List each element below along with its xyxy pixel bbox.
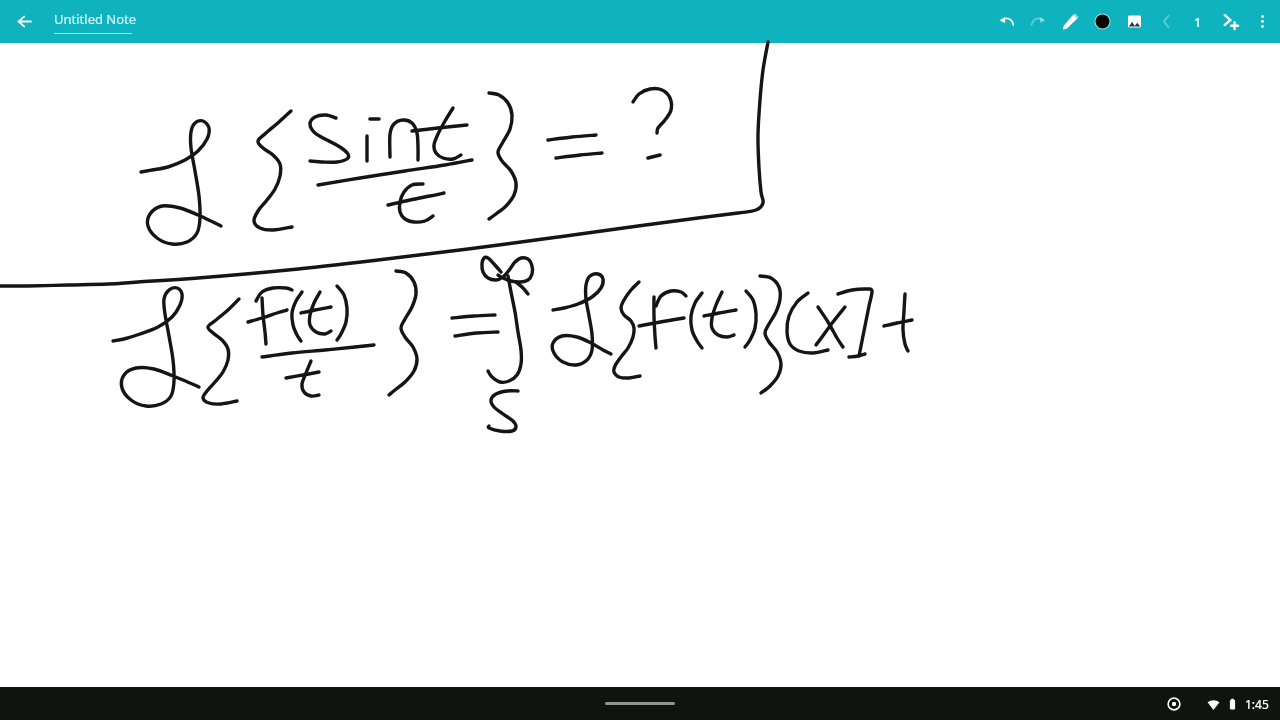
button[interactable]: Insert image	[1118, 0, 1150, 43]
button[interactable]: Colour	[1086, 0, 1118, 43]
button[interactable]: Note drawing canvas	[0, 43, 1280, 687]
button[interactable]: Back	[6, 3, 43, 40]
button[interactable]: More options	[1246, 0, 1278, 43]
button[interactable]: Add page	[1214, 0, 1246, 43]
staticText: Untitled Note	[54, 10, 137, 28]
button[interactable]: Undo	[990, 0, 1022, 43]
staticText: 1	[1194, 13, 1202, 31]
button[interactable]: Previous page	[1150, 0, 1182, 43]
staticText: 1:45	[1245, 696, 1269, 712]
button[interactable]: Page 1	[1182, 0, 1214, 43]
button[interactable]: Pen	[1054, 0, 1086, 43]
button[interactable]: Redo	[1022, 0, 1054, 43]
button[interactable]: Untitled Note	[54, 10, 137, 34]
